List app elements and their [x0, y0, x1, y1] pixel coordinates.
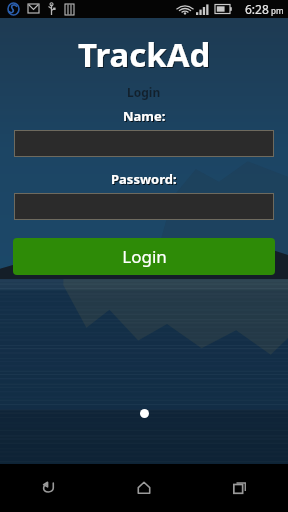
button[interactable]: Recents	[192, 464, 288, 512]
staticText: Password:	[111, 170, 177, 188]
staticText: Password:	[112, 171, 178, 189]
button[interactable]: Home	[96, 464, 192, 512]
staticText: pm	[271, 5, 284, 16]
staticText: 6:28	[245, 1, 269, 17]
staticText: Login	[127, 84, 161, 100]
button[interactable]: Login	[13, 238, 275, 275]
button[interactable]: Back	[0, 464, 96, 512]
staticText: TrackAd	[79, 33, 212, 78]
staticText: TrackAd	[78, 32, 211, 77]
staticText: Name:	[124, 108, 167, 126]
staticText: Name:	[123, 107, 166, 125]
staticText: Login	[122, 245, 167, 268]
